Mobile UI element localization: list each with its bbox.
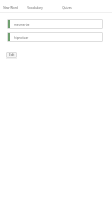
- staticText: hipnotizar: [14, 36, 29, 40]
- staticText: Vocabulary: [27, 6, 43, 10]
- staticText: mesmerize: [14, 23, 30, 27]
- staticText: Edit: [9, 53, 15, 57]
- staticText: Quizes: [62, 6, 72, 10]
- staticText: New Word: [3, 6, 18, 10]
- button[interactable]: Vocabulary: [22, 0, 48, 12]
- button[interactable]: Quizes: [54, 0, 79, 12]
- button[interactable]: New Word: [0, 0, 20, 12]
- button[interactable]: Edit: [6, 52, 17, 58]
